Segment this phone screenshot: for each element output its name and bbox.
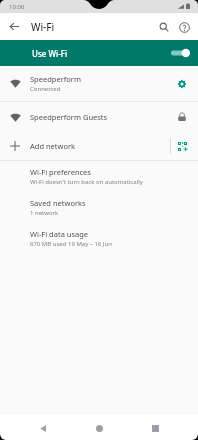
button[interactable]: Home xyxy=(90,419,108,437)
staticText: Speedperform xyxy=(30,74,81,84)
button[interactable]: Back xyxy=(5,17,24,36)
staticText: Connected xyxy=(30,85,61,93)
button[interactable]: Back xyxy=(34,419,52,437)
staticText: Wi-Fi doesn't turn back on automatically xyxy=(30,178,143,186)
button[interactable]: Secured network xyxy=(174,109,190,125)
staticText: Speedperform Guests xyxy=(30,112,108,122)
staticText: Wi-Fi preferences xyxy=(30,167,91,177)
button[interactable]: Speedperform xyxy=(0,66,198,101)
staticText: 670 MB used 19 May – 16 Jun xyxy=(30,240,112,248)
button[interactable]: Help xyxy=(174,17,194,37)
staticText: 1 network xyxy=(30,209,59,217)
button[interactable]: Use Wi-Fi xyxy=(0,40,198,66)
staticText: Saved networks xyxy=(30,198,86,208)
button[interactable]: Add network xyxy=(0,132,198,160)
staticText: Wi-Fi data usage xyxy=(30,229,89,239)
staticText: Use Wi-Fi xyxy=(32,48,68,59)
button[interactable]: Network settings xyxy=(174,76,190,92)
button[interactable]: Saved networks xyxy=(0,192,198,223)
button[interactable]: Wi-Fi preferences xyxy=(0,161,198,192)
button[interactable]: Wi-Fi data usage xyxy=(0,223,198,254)
button[interactable]: Recent apps xyxy=(146,419,164,437)
staticText: Add network xyxy=(30,141,170,151)
button[interactable]: Search xyxy=(154,17,174,37)
button[interactable]: Scan QR code xyxy=(175,139,190,154)
button[interactable]: Speedperform Guests xyxy=(0,102,198,132)
staticText: Wi-Fi xyxy=(31,20,55,34)
staticText: 10:00 xyxy=(9,3,25,11)
